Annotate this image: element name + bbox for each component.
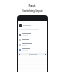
button[interactable] [19, 23, 47, 27]
button[interactable] [19, 47, 47, 52]
button[interactable] [19, 42, 47, 47]
staticText: Switching Input [22, 9, 43, 13]
button[interactable] [19, 37, 47, 42]
button[interactable] [19, 32, 47, 37]
staticText: Fast [28, 3, 36, 8]
